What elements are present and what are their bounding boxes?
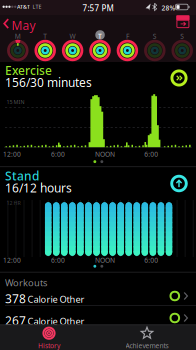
staticText: S [153, 32, 157, 41]
staticText: LTE [32, 3, 41, 10]
button[interactable]: S [172, 30, 192, 61]
button[interactable]: T [90, 30, 110, 61]
button[interactable]: 378 [0, 289, 196, 302]
staticText: 12:00 [3, 256, 21, 265]
staticText: Stand [5, 168, 39, 184]
staticText: 15 MIN [6, 98, 24, 106]
staticText: 28% [161, 3, 175, 12]
staticText: History [38, 341, 60, 350]
button[interactable] [170, 174, 188, 192]
button[interactable]: Achievements [98, 324, 196, 350]
staticText: 267 [5, 313, 26, 329]
staticText: 378 [5, 291, 26, 307]
staticText: Calorie Other [27, 315, 84, 327]
button[interactable]: F [117, 30, 137, 61]
staticText: NOON [95, 150, 115, 159]
staticText: 6:00 [51, 150, 65, 159]
staticText: Workouts [5, 276, 47, 289]
staticText: 12 HR [6, 199, 20, 207]
staticText: 7:57 PM [82, 3, 113, 13]
staticText: 156/30 minutes [5, 74, 92, 90]
staticText: W [70, 32, 76, 41]
staticText: Exercise [5, 62, 52, 78]
button[interactable]: W [63, 30, 83, 61]
staticText: 6:00 [144, 256, 158, 265]
staticText: AT&T [17, 3, 30, 10]
staticText: M [15, 32, 21, 41]
staticText: F [126, 32, 129, 41]
staticText: 12:00 [3, 150, 21, 159]
staticText: 6:00 [144, 150, 158, 159]
staticText: Achievements [125, 341, 168, 350]
staticText: T [98, 32, 102, 41]
button[interactable] [170, 69, 188, 87]
staticText: NOON [95, 256, 115, 265]
button[interactable] [176, 15, 190, 28]
staticText: Calorie Other [27, 293, 84, 305]
staticText: 16/12 hours [5, 180, 72, 196]
button[interactable]: May [0, 17, 34, 29]
button[interactable]: 267 [0, 311, 196, 324]
button[interactable]: M [8, 30, 28, 61]
button[interactable]: S [145, 30, 165, 61]
staticText: May [11, 17, 35, 33]
staticText: S [180, 32, 184, 41]
staticText: 6:00 [51, 256, 65, 265]
staticText: T [43, 32, 47, 41]
button[interactable]: T [35, 30, 55, 61]
button[interactable]: History [0, 324, 98, 350]
